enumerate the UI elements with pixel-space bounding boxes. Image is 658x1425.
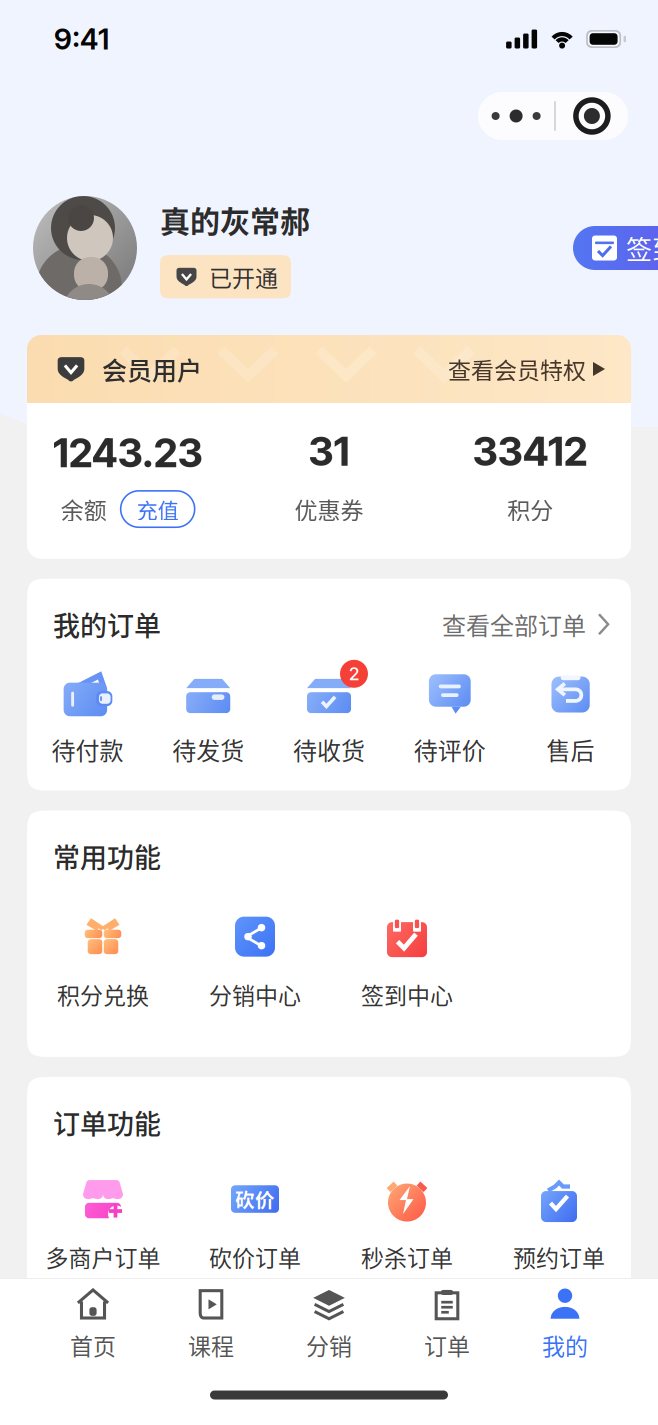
staticText: 常用功能: [53, 837, 161, 876]
staticText: 订单: [424, 1328, 470, 1362]
button[interactable]: 待付款: [27, 660, 148, 771]
staticText: 多商户订单: [45, 1240, 160, 1273]
staticText: 1243.23: [53, 428, 203, 477]
button[interactable]: 预约订单: [483, 1168, 635, 1277]
staticText: 33412: [473, 427, 588, 475]
button[interactable]: 2: [269, 660, 389, 771]
button[interactable]: 签到中心: [331, 906, 483, 1015]
button[interactable]: 积分兑换: [27, 906, 179, 1015]
button[interactable]: 待发货: [148, 660, 269, 771]
staticText: 课程: [188, 1328, 234, 1362]
button[interactable]: 首页: [34, 1276, 152, 1368]
button[interactable]: 查看会员特权: [448, 352, 605, 386]
staticText: 查看全部订单: [442, 607, 586, 642]
staticText: 分销: [306, 1328, 352, 1362]
button[interactable]: 课程: [152, 1276, 270, 1368]
staticText: 砍价: [235, 1185, 275, 1213]
staticText: 砍价订单: [209, 1240, 301, 1273]
button[interactable]: 砍价: [179, 1168, 331, 1277]
staticText: 真的灰常郝: [160, 198, 310, 241]
button[interactable]: 分销: [270, 1276, 388, 1368]
button[interactable]: 充值: [121, 491, 195, 527]
staticText: 签到中心: [361, 978, 453, 1011]
staticText: 余额: [61, 492, 107, 526]
button[interactable]: 待评价: [389, 660, 510, 771]
staticText: 查看会员特权: [448, 352, 586, 386]
staticText: 分销中心: [209, 978, 301, 1011]
staticText: 31: [308, 427, 349, 475]
staticText: 我的: [542, 1328, 588, 1362]
staticText: 售后: [547, 732, 595, 767]
button[interactable]: 订单: [388, 1276, 506, 1368]
staticText: 待评价: [414, 732, 486, 767]
staticText: 会员用户: [102, 351, 202, 387]
staticText: 首页: [70, 1328, 116, 1362]
button[interactable]: 售后: [510, 660, 631, 771]
button[interactable]: Menu: [478, 92, 628, 140]
button[interactable]: 签到: [529, 226, 658, 270]
staticText: 订单功能: [53, 1103, 161, 1142]
staticText: 积分兑换: [57, 978, 149, 1011]
staticText: 秒杀订单: [361, 1240, 453, 1273]
button[interactable]: 秒杀订单: [331, 1168, 483, 1277]
staticText: 预约订单: [513, 1240, 605, 1273]
staticText: 已开通: [209, 260, 278, 293]
staticText: 我的订单: [53, 605, 161, 644]
staticText: 签到: [626, 229, 658, 267]
staticText: 充值: [137, 494, 179, 524]
staticText: 积分: [507, 492, 553, 526]
staticText: 待发货: [172, 732, 244, 767]
button[interactable]: 查看全部订单: [442, 607, 611, 642]
staticText: 优惠券: [294, 492, 363, 526]
button[interactable]: 我的: [506, 1276, 624, 1368]
staticText: 9:41: [54, 21, 109, 57]
button[interactable]: 多商户订单: [27, 1168, 179, 1277]
staticText: 待收货: [293, 732, 365, 767]
staticText: 待付款: [51, 732, 123, 767]
button[interactable]: 分销中心: [179, 906, 331, 1015]
staticText: 2: [349, 663, 359, 685]
